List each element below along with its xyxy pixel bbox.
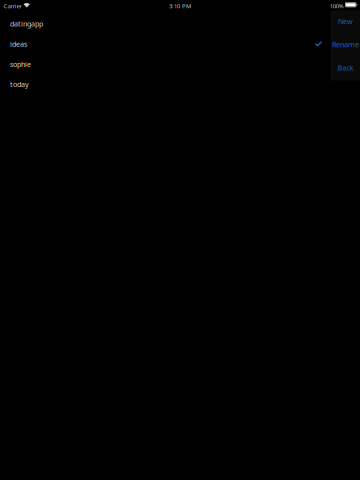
staticText: Carrier bbox=[3, 2, 21, 10]
button[interactable]: ideas bbox=[10, 39, 322, 49]
staticText: sophie bbox=[10, 59, 31, 69]
button[interactable]: sophie bbox=[10, 59, 322, 69]
staticText: Rename bbox=[332, 39, 359, 49]
staticText: datingapp bbox=[10, 19, 43, 29]
staticText: 3:10 PM bbox=[169, 2, 191, 10]
button[interactable]: Back bbox=[331, 57, 360, 80]
staticText: New bbox=[338, 16, 353, 26]
button[interactable]: datingapp bbox=[10, 19, 322, 29]
staticText: ideas bbox=[10, 39, 27, 49]
staticText: Back bbox=[337, 63, 353, 72]
button[interactable]: Rename bbox=[331, 34, 360, 57]
button[interactable]: today bbox=[10, 79, 322, 89]
staticText: today bbox=[10, 79, 29, 89]
button[interactable]: New bbox=[331, 11, 360, 34]
staticText: 100% bbox=[330, 2, 344, 10]
